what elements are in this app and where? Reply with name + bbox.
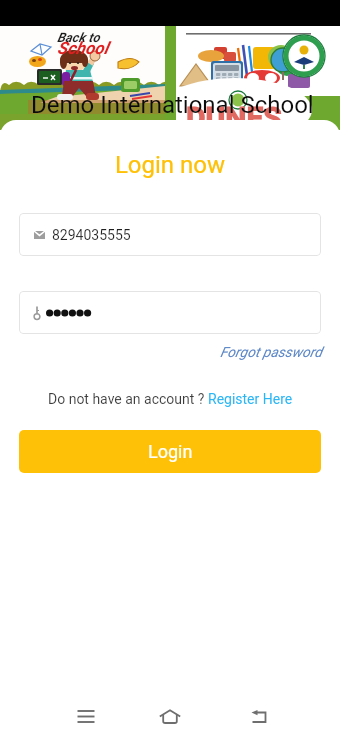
button[interactable]: Recent apps bbox=[61, 695, 111, 737]
staticText: School bbox=[57, 38, 108, 58]
staticText: Login now bbox=[0, 151, 340, 179]
staticText: Demo International School bbox=[31, 91, 314, 119]
button[interactable]: 8294035555 bbox=[19, 213, 321, 256]
button[interactable]: Login bbox=[19, 430, 321, 473]
staticText: Forgot password bbox=[220, 344, 322, 360]
button[interactable]: Forgot password bbox=[220, 344, 322, 360]
button[interactable] bbox=[19, 291, 321, 334]
button[interactable]: Register Here bbox=[208, 391, 293, 407]
staticText: Login bbox=[148, 441, 193, 462]
staticText: Do not have an account ? bbox=[48, 391, 208, 407]
button[interactable]: Back bbox=[234, 695, 284, 737]
staticText: 8294035555 bbox=[52, 227, 131, 243]
button[interactable]: Home bbox=[145, 695, 195, 737]
staticText: DUNES bbox=[186, 100, 282, 135]
staticText: Register Here bbox=[208, 391, 293, 407]
staticText: Back to bbox=[57, 30, 100, 45]
